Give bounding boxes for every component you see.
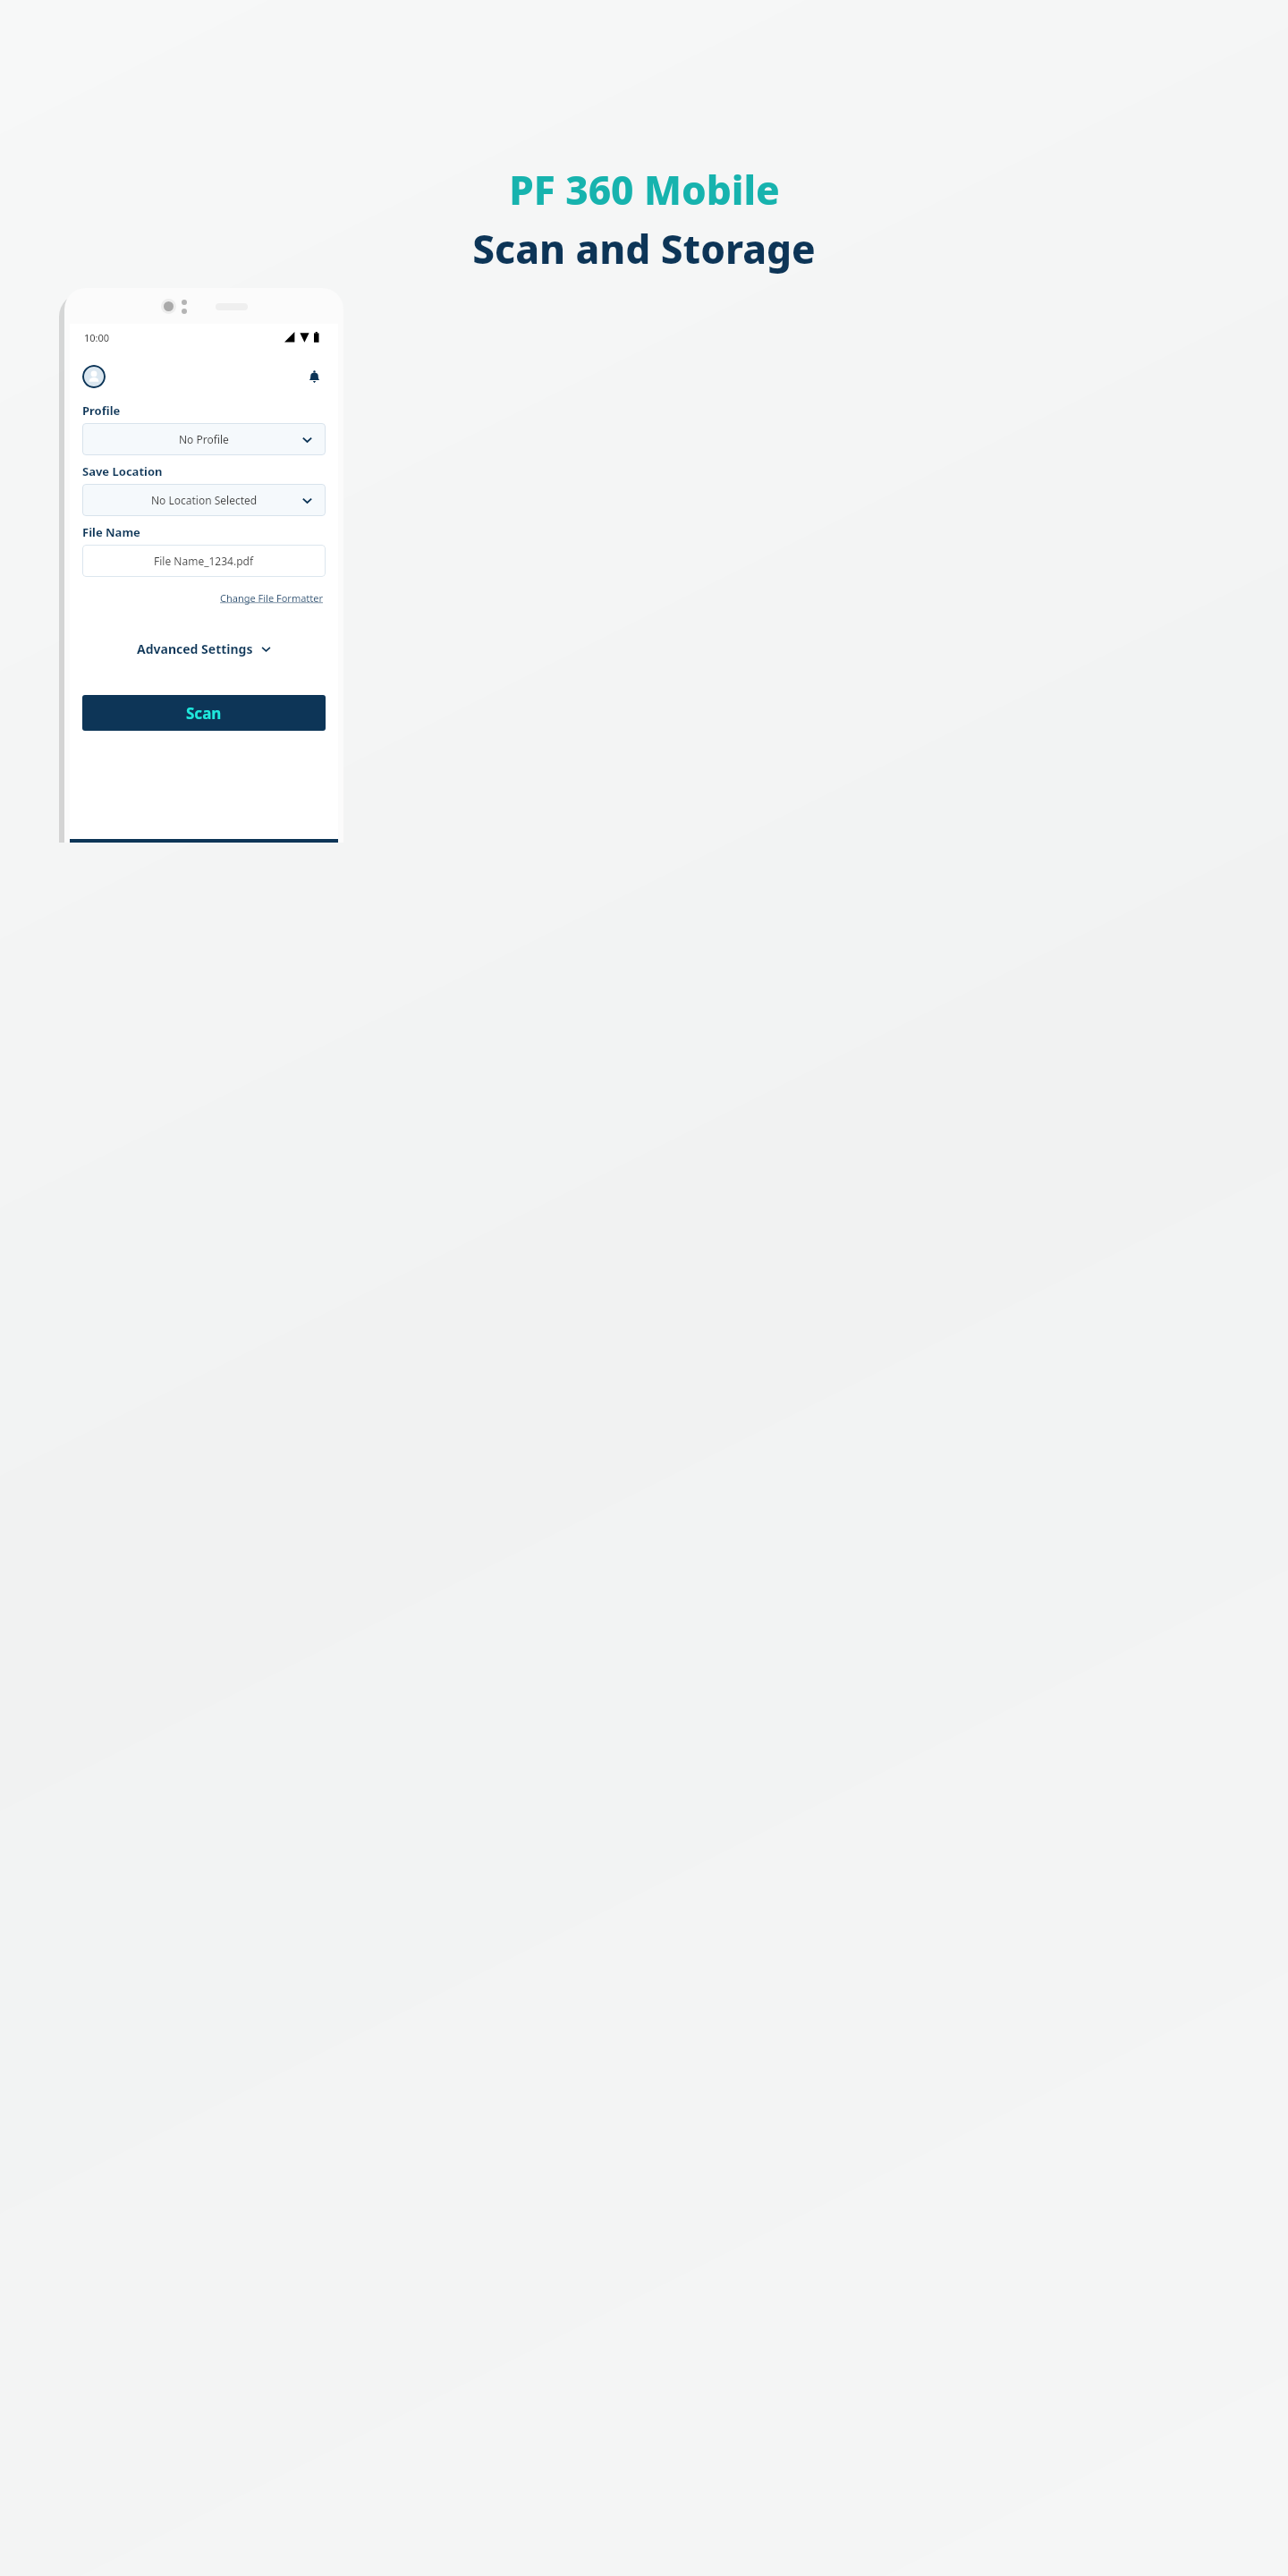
button[interactable]: Notifications — [302, 365, 326, 388]
staticText: File Name_1234.pdf — [154, 554, 254, 568]
button[interactable]: Profile avatar — [82, 365, 106, 388]
button[interactable]: File Name_1234.pdf — [82, 545, 326, 577]
staticText: 10:00 — [84, 331, 110, 344]
staticText: Scan and Storage — [472, 222, 816, 275]
button[interactable]: No Location Selected — [82, 484, 326, 516]
staticText: Profile — [82, 402, 121, 419]
staticText: Advanced Settings — [137, 640, 253, 657]
button[interactable]: Scan — [82, 695, 326, 731]
staticText: No Profile — [179, 432, 229, 446]
button[interactable]: Change File Formatter — [218, 589, 326, 606]
staticText: No Location Selected — [151, 493, 258, 507]
staticText: Save Location — [82, 463, 163, 479]
staticText: PF 360 Mobile — [509, 163, 780, 216]
button[interactable]: Advanced Settings — [82, 640, 326, 657]
staticText: File Name — [82, 524, 140, 540]
button[interactable]: No Profile — [82, 423, 326, 455]
staticText: Change File Formatter — [220, 591, 324, 605]
staticText: Scan — [186, 703, 222, 724]
